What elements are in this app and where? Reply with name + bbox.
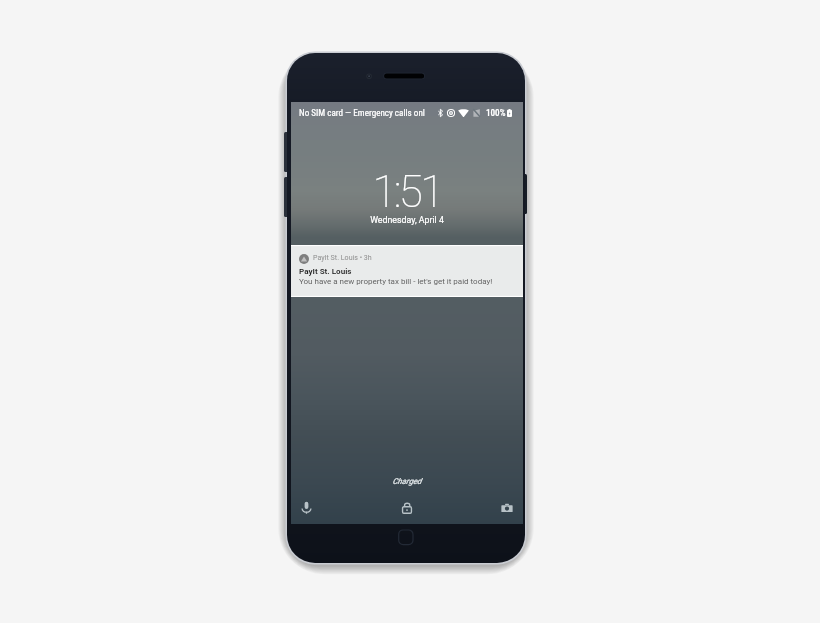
button[interactable]: PayIt St. Louis • 3h (291, 245, 523, 297)
button[interactable]: Voice assistant (299, 500, 314, 515)
staticText: PayIt St. Louis • 3h (313, 253, 372, 261)
staticText: You have a new property tax bill - let's… (299, 277, 493, 286)
staticText: 100% (486, 108, 506, 119)
staticText: 1:51 (291, 166, 523, 218)
staticText: PayIt St. Louis (299, 266, 352, 275)
staticText: Wednesday, April 4 (291, 215, 523, 225)
button[interactable]: Unlock (399, 500, 414, 515)
staticText: Charged (291, 477, 523, 486)
button[interactable]: Camera (499, 500, 514, 515)
staticText: No SIM card — Emergency calls only (299, 108, 425, 119)
